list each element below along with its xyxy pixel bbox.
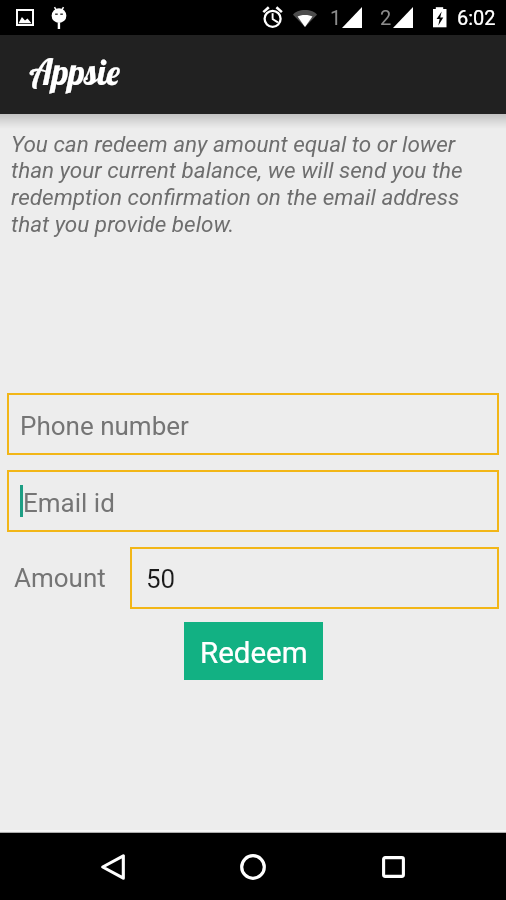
button[interactable]: 50 (130, 547, 499, 609)
staticText: Amount (14, 563, 106, 593)
staticText: Email id (23, 488, 115, 518)
button[interactable]: Email id (7, 470, 499, 532)
staticText: Redeem (200, 636, 308, 671)
button[interactable]: Recent apps (359, 833, 428, 900)
staticText: Phone number (20, 411, 189, 441)
button[interactable]: Phone number (7, 393, 499, 455)
staticText: You can redeem any amount equal to or lo… (11, 131, 476, 237)
button[interactable]: Redeem (184, 622, 323, 680)
staticText: Appsie (31, 50, 121, 93)
button[interactable]: Back (78, 833, 147, 900)
staticText: 6:02 (457, 6, 496, 29)
staticText: 1 (330, 6, 342, 29)
staticText: 50 (146, 564, 176, 594)
button[interactable]: Home (218, 833, 287, 900)
staticText: 2 (380, 6, 392, 29)
